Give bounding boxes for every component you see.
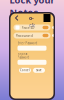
staticText: Enter Password xyxy=(17,41,37,45)
staticText: Lock xyxy=(29,7,35,29)
staticText: Save xyxy=(36,69,42,72)
button[interactable]: Cancel xyxy=(19,68,31,73)
button[interactable]: Save xyxy=(33,68,45,73)
staticText: Lock your Notes xyxy=(9,0,54,18)
button[interactable]: Face ID xyxy=(13,24,50,30)
staticText: Repeat Password xyxy=(17,52,29,59)
staticText: Password xyxy=(15,33,32,38)
staticText: Cancel xyxy=(20,69,30,72)
staticText: Face ID xyxy=(21,25,34,30)
button[interactable]: Password xyxy=(13,32,50,38)
button[interactable]: Back xyxy=(13,14,20,22)
